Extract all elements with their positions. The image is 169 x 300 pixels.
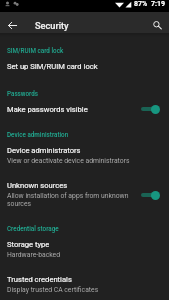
staticText: Security <box>35 20 69 31</box>
staticText: Device administrators <box>7 146 81 155</box>
staticText: View or deactivate device administrators <box>7 157 130 165</box>
staticText: Unknown sources <box>7 181 68 190</box>
staticText: Credential storage <box>7 225 59 232</box>
button[interactable]: Unknown sources <box>0 181 169 208</box>
button[interactable]: Device administrators <box>0 146 169 165</box>
staticText: Hardware-backed <box>7 251 61 259</box>
staticText: Device administration <box>7 131 69 138</box>
staticText: SIM/RUIM card lock <box>7 47 64 54</box>
button[interactable]: Navigate up <box>0 17 24 33</box>
button[interactable]: Set up SIM/RUIM card lock <box>0 62 169 71</box>
staticText: Passwords <box>7 90 39 97</box>
staticText: Display trusted CA certificates <box>7 286 99 294</box>
staticText: 87% <box>134 0 148 8</box>
staticText: Set up SIM/RUIM card lock <box>7 62 98 71</box>
button[interactable]: Search <box>145 17 169 33</box>
staticText: Allow installation of apps from unknown … <box>7 192 136 208</box>
button[interactable]: Trusted credentials <box>0 275 169 294</box>
staticText: 7:19 <box>151 0 166 8</box>
button[interactable]: Make passwords visible <box>0 104 169 114</box>
button[interactable]: Storage type <box>0 240 169 259</box>
staticText: Make passwords visible <box>7 105 88 114</box>
staticText: Trusted credentials <box>7 275 72 284</box>
staticText: Storage type <box>7 240 50 249</box>
